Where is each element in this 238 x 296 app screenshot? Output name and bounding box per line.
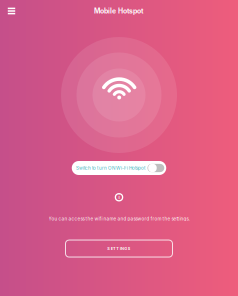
button[interactable]: SETTINGS xyxy=(65,240,172,257)
button[interactable]: Switch to turn ON Wi-Fi Hotspot xyxy=(72,161,166,175)
staticText: Switch to turn ON Wi-Fi Hotspot xyxy=(76,165,146,171)
staticText: Mobile Hotspot xyxy=(94,7,144,15)
staticText: SETTINGS xyxy=(107,246,131,251)
staticText: i xyxy=(118,194,119,200)
staticText: You can access the wifi name and passwor… xyxy=(48,216,189,222)
button[interactable]: Menu xyxy=(0,0,23,22)
